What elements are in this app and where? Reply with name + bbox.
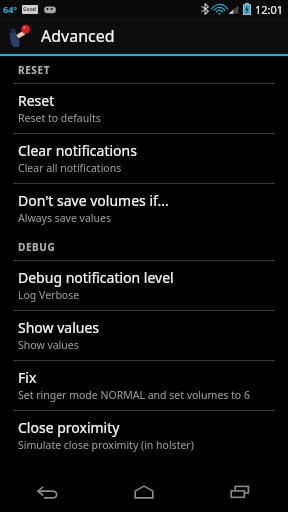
staticText: RESET (18, 63, 51, 77)
staticText: Always save values (18, 211, 111, 225)
staticText: Clear notifications (18, 141, 137, 160)
button[interactable]: Debug notification level (0, 261, 288, 310)
staticText: Simulate close proximity (in holster) (18, 438, 194, 452)
staticText: Fix (18, 368, 37, 387)
staticText: Good (23, 6, 37, 13)
button[interactable]: Back (0, 472, 96, 512)
staticText: Log Verbose (18, 288, 80, 302)
staticText: Show values (18, 318, 100, 337)
staticText: Reset (18, 91, 55, 110)
staticText: Debug notification level (18, 268, 174, 287)
staticText: 64° (3, 3, 18, 15)
staticText: Don't save volumes if... (18, 191, 169, 210)
button[interactable]: Clear notifications (0, 134, 288, 183)
button[interactable]: Don't save volumes if... (0, 184, 288, 233)
button[interactable]: Close proximity (0, 411, 288, 460)
staticText: Clear all notifications (18, 161, 122, 175)
staticText: Reset to defaults (18, 111, 101, 125)
button[interactable]: Advanced (0, 18, 288, 54)
staticText: Close proximity (18, 418, 120, 437)
staticText: DEBUG (18, 240, 56, 254)
button[interactable]: Home (96, 472, 192, 512)
staticText: Show values (18, 338, 79, 352)
staticText: Set ringer mode NORMAL and set volumes t… (18, 388, 250, 402)
button[interactable]: Reset (0, 84, 288, 133)
button[interactable]: Fix (0, 361, 288, 410)
button[interactable]: Show values (0, 311, 288, 360)
staticText: Advanced (41, 25, 115, 47)
staticText: 12:01 (255, 2, 284, 17)
button[interactable]: Recent apps (192, 472, 288, 512)
